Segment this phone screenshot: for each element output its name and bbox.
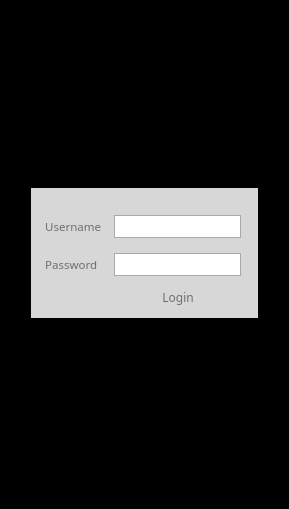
staticText: Password [45,257,114,273]
staticText: Username [45,219,114,235]
button[interactable]: Login [114,284,241,310]
button[interactable]: Password input field [114,253,241,276]
button[interactable]: Username input field [114,215,241,238]
staticText: Login [162,289,194,305]
